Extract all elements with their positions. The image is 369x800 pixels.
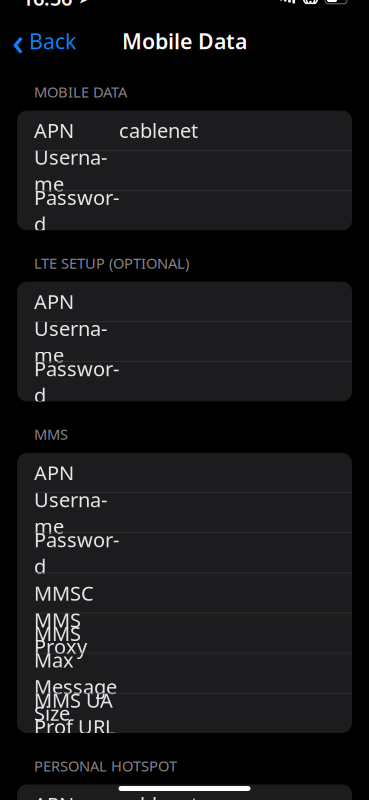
staticText: Password bbox=[34, 355, 119, 408]
button[interactable]: APN bbox=[17, 453, 352, 493]
button[interactable]: Username bbox=[17, 493, 352, 533]
staticText: APN bbox=[34, 459, 74, 486]
staticText: Username bbox=[34, 144, 107, 197]
button[interactable]: APN bbox=[17, 110, 352, 151]
staticText: Back bbox=[29, 27, 76, 55]
staticText: Password bbox=[34, 184, 119, 237]
button[interactable]: Username bbox=[17, 322, 352, 362]
staticText: PERSONAL HOTSPOT bbox=[34, 756, 177, 775]
staticText: MMS Proxy bbox=[34, 606, 87, 660]
staticText: ➤ bbox=[72, 0, 91, 7]
staticText: Mobile Data bbox=[122, 27, 247, 55]
button[interactable]: Username bbox=[17, 151, 352, 191]
staticText: cablenet bbox=[119, 117, 198, 144]
staticText: LTE SETUP (OPTIONAL) bbox=[34, 253, 189, 273]
staticText: Password bbox=[34, 526, 119, 579]
button[interactable]: ‹ bbox=[0, 20, 88, 62]
button[interactable]: APN bbox=[17, 784, 352, 800]
button[interactable]: Password bbox=[17, 533, 352, 573]
staticText: APN bbox=[34, 117, 74, 144]
button[interactable]: Password bbox=[17, 362, 352, 401]
button[interactable]: MMS UA Prof URL bbox=[17, 693, 352, 733]
button[interactable]: MMS Max Message Size bbox=[17, 653, 352, 693]
button[interactable]: Password bbox=[17, 191, 352, 230]
button[interactable]: APN bbox=[17, 282, 352, 322]
button[interactable]: MMS Proxy bbox=[17, 613, 352, 653]
staticText: MMS Max Message Size bbox=[34, 620, 117, 726]
staticText: 16:56 bbox=[22, 0, 72, 11]
staticText: MOBILE DATA bbox=[34, 82, 127, 101]
staticText: ‹ bbox=[12, 16, 24, 66]
staticText: MMSC bbox=[34, 580, 94, 606]
staticText: Username bbox=[34, 486, 107, 539]
staticText: cablenet bbox=[119, 791, 198, 800]
staticText: APN bbox=[34, 288, 74, 315]
staticText: MMS bbox=[34, 424, 68, 444]
staticText: MMS UA Prof URL bbox=[34, 687, 115, 740]
button[interactable]: MMSC bbox=[17, 573, 352, 613]
staticText: Username bbox=[34, 315, 107, 368]
staticText: APN bbox=[34, 791, 74, 800]
